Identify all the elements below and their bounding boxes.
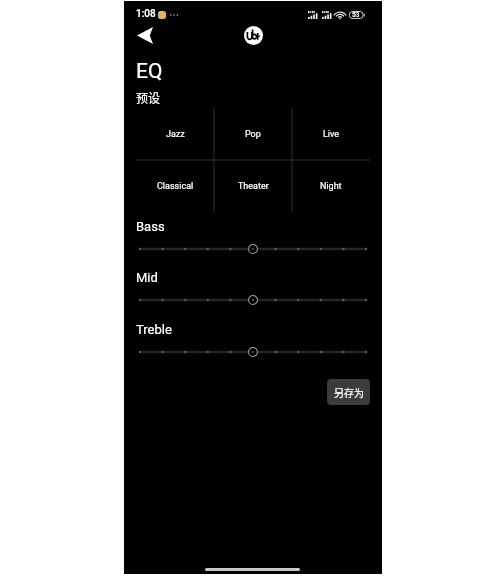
staticText: Treble	[136, 322, 172, 337]
staticText: Theater	[238, 181, 269, 192]
staticText: Jazz	[166, 129, 185, 140]
button[interactable]: Mid slider	[136, 291, 370, 309]
staticText: 预设	[136, 89, 161, 106]
staticText: EQ	[136, 59, 163, 84]
button[interactable]: Live	[292, 108, 370, 160]
button[interactable]: Ubplus logo	[244, 26, 263, 45]
button[interactable]: Theater	[214, 160, 292, 212]
button[interactable]: Jazz	[136, 108, 214, 160]
staticText: Classical	[157, 181, 194, 192]
button[interactable]: Night	[292, 160, 370, 212]
staticText: Mid	[136, 270, 158, 285]
staticText: Bass	[136, 219, 165, 234]
button[interactable]: Bass slider	[136, 240, 370, 258]
button[interactable]: 另存为	[327, 379, 370, 405]
button[interactable]: Pop	[214, 108, 292, 160]
staticText: 1:08	[136, 8, 156, 20]
button[interactable]: Classical	[136, 160, 214, 212]
staticText: 另存为	[334, 385, 364, 399]
staticText: Live	[323, 129, 340, 140]
staticText: 53	[352, 11, 360, 19]
staticText: Night	[320, 181, 342, 192]
staticText: Pop	[245, 129, 261, 140]
button[interactable]: Treble slider	[136, 343, 370, 361]
button[interactable]: Back	[133, 24, 157, 47]
